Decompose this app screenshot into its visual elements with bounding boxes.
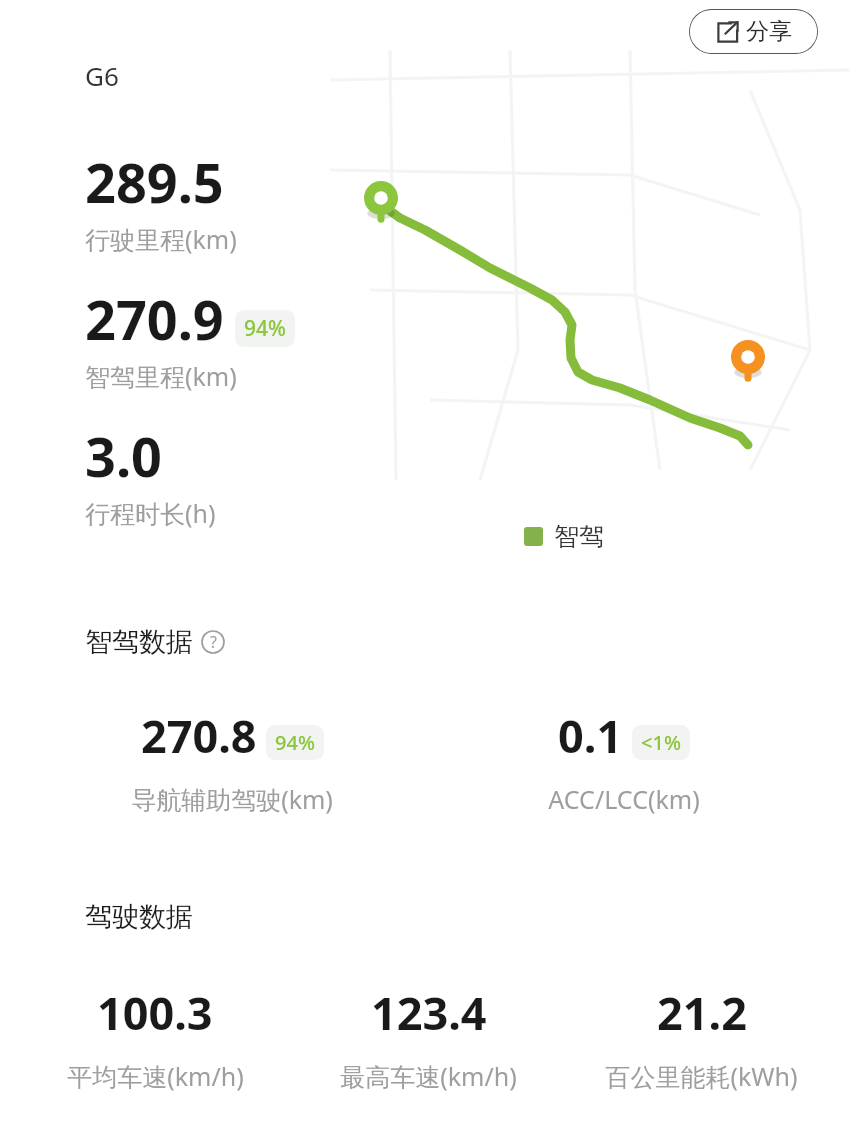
staticText: ACC/LCC(km) <box>548 782 700 816</box>
staticText: 270.8 <box>141 705 257 766</box>
staticText: 智驾数据 <box>85 625 193 659</box>
staticText: 百公里能耗(kWh) <box>605 1059 798 1093</box>
button[interactable]: About smart driving data <box>200 629 226 655</box>
staticText: 0.1 <box>558 705 623 766</box>
staticText: 21.2 <box>657 982 747 1043</box>
staticText: 123.4 <box>371 982 487 1043</box>
staticText: 100.3 <box>97 982 213 1043</box>
staticText: 94% <box>275 729 315 756</box>
staticText: 3.0 <box>85 419 162 493</box>
staticText: 270.9 <box>85 282 224 356</box>
staticText: 平均车速(km/h) <box>67 1059 244 1093</box>
staticText: 94% <box>244 314 286 343</box>
staticText: 智驾 <box>554 521 604 552</box>
staticText: 驾驶数据 <box>85 900 193 934</box>
staticText: <1% <box>641 729 681 756</box>
staticText: 最高车速(km/h) <box>340 1059 517 1093</box>
staticText: 289.5 <box>85 145 224 219</box>
staticText: 行驶里程(km) <box>85 222 237 256</box>
staticText: 导航辅助驾驶(km) <box>131 782 333 816</box>
button[interactable]: 分享 <box>689 9 818 54</box>
staticText: ? <box>210 631 217 653</box>
staticText: G6 <box>85 58 119 93</box>
staticText: 智驾里程(km) <box>85 359 237 393</box>
staticText: 行程时长(h) <box>85 496 216 530</box>
staticText: 分享 <box>746 17 792 46</box>
